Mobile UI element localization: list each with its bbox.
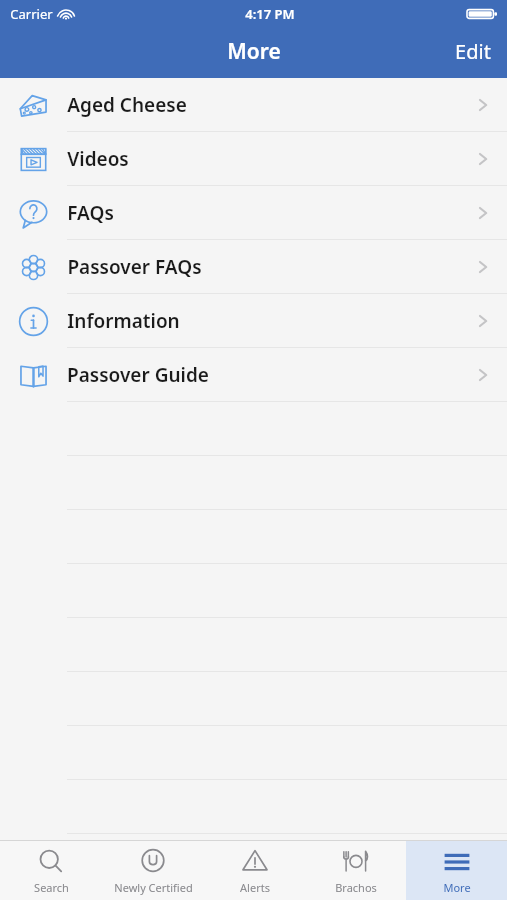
staticText: Videos — [67, 146, 129, 172]
button[interactable]: Edit — [439, 32, 507, 71]
button[interactable]: Passover FAQs — [0, 240, 507, 294]
button[interactable]: Passover Guide — [0, 348, 507, 402]
other: FAQs — [17, 197, 50, 230]
button[interactable]: Brachos — [305, 841, 406, 900]
button[interactable]: Information — [0, 294, 507, 348]
button[interactable]: More — [406, 841, 507, 900]
staticText: Newly Certified — [114, 880, 193, 895]
button[interactable]: FAQs — [0, 186, 507, 240]
button[interactable]: Aged Cheese — [0, 78, 507, 132]
staticText: Edit — [455, 38, 491, 65]
other: Videos — [17, 143, 50, 176]
button[interactable]: Newly Certified — [102, 841, 204, 900]
staticText: Passover FAQs — [67, 254, 202, 280]
staticText: Brachos — [335, 880, 377, 895]
button[interactable]: Alerts — [204, 841, 305, 900]
staticText: Aged Cheese — [67, 92, 187, 118]
staticText: 4:17 PM — [245, 5, 295, 23]
staticText: More — [227, 37, 281, 66]
button[interactable]: Videos — [0, 132, 507, 186]
staticText: Passover Guide — [67, 362, 209, 388]
staticText: More — [443, 880, 471, 895]
staticText: Carrier — [10, 5, 53, 23]
staticText: Alerts — [240, 880, 270, 895]
staticText: Information — [67, 308, 180, 334]
other: Aged Cheese — [17, 89, 50, 122]
staticText: FAQs — [67, 200, 114, 226]
other: Information — [17, 305, 50, 338]
other: Passover Guide — [17, 359, 50, 392]
staticText: Search — [34, 880, 69, 895]
button[interactable]: Search — [0, 841, 102, 900]
other: Passover FAQs — [17, 251, 50, 284]
